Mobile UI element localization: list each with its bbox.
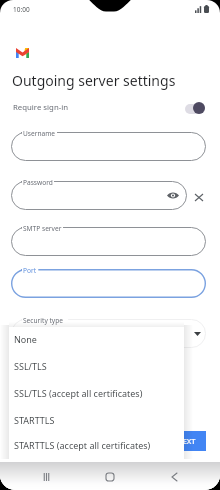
button[interactable]: Require sign-in (185, 102, 205, 114)
button[interactable]: Home (92, 464, 128, 490)
button[interactable]: Username (11, 132, 206, 161)
button[interactable]: STARTTLS (9, 406, 184, 433)
button[interactable]: None (9, 327, 184, 352)
staticText: Port (23, 266, 37, 275)
staticText: Require sign-in (13, 102, 69, 113)
staticText: None (14, 333, 37, 345)
staticText: Password (23, 178, 53, 187)
staticText: Outgoing server settings (12, 71, 176, 90)
button[interactable]: NEXT (166, 431, 206, 451)
button[interactable]: STARTTLS (accept all certificates) (9, 433, 184, 457)
button[interactable]: SSL/TLS (accept all certificates) (9, 379, 184, 406)
button[interactable]: Show password (166, 188, 180, 202)
staticText: Username (23, 129, 56, 138)
button[interactable]: Password (11, 181, 187, 210)
staticText: STARTTLS (accept all certificates) (14, 439, 151, 451)
button[interactable]: Security type (11, 319, 206, 348)
button[interactable]: Port (11, 269, 206, 298)
button[interactable]: Back (156, 464, 192, 490)
button[interactable]: Clear password (192, 190, 206, 204)
button[interactable]: Open security type list (190, 327, 204, 341)
staticText: SSL/TLS (accept all certificates) (14, 387, 143, 399)
staticText: Security type (23, 316, 63, 325)
staticText: NEXT (177, 436, 196, 446)
button[interactable]: SMTP server (11, 227, 206, 256)
button[interactable]: Recents (28, 464, 64, 490)
button[interactable]: SSL/TLS (9, 352, 184, 379)
staticText: STARTTLS (14, 414, 55, 426)
staticText: 10:00 (13, 5, 30, 14)
staticText: SMTP server (23, 224, 62, 233)
staticText: SSL/TLS (14, 360, 47, 372)
